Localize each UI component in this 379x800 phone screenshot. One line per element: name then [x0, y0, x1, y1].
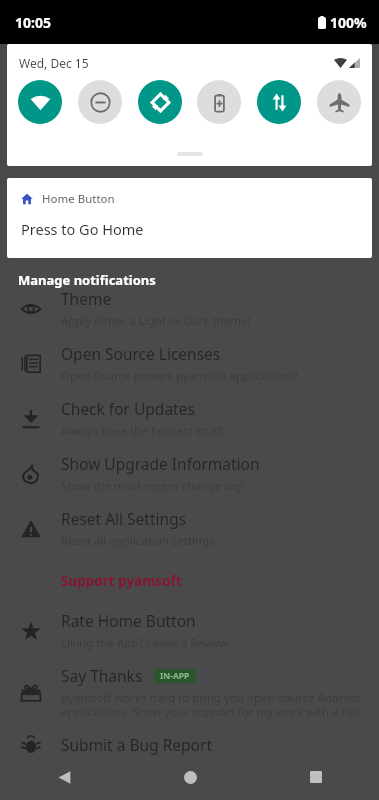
staticText: Liking the App? Leave a Review!: [61, 635, 231, 651]
staticText: Theme: [61, 288, 112, 309]
staticText: IN-APP: [160, 670, 190, 682]
button[interactable]: Open Source Licenses: [0, 336, 379, 391]
staticText: 10:05: [15, 13, 51, 32]
staticText: Open Source powers pyamsoft applications…: [61, 368, 298, 384]
button[interactable]: Check for Updates: [0, 391, 379, 446]
staticText: Say Thanks: [61, 665, 143, 686]
staticText: Home Button: [42, 191, 115, 207]
staticText: Show the most recent change log!: [61, 478, 245, 494]
button[interactable]: Rate Home Button: [0, 603, 379, 658]
button[interactable]: Say Thanks: [0, 658, 379, 727]
staticText: Check for Updates: [61, 398, 195, 419]
button[interactable]: Reset All Settings: [0, 501, 379, 556]
staticText: Apply either a Light or Dark theme!: [61, 313, 251, 329]
button[interactable]: Recents: [294, 755, 338, 799]
button[interactable]: Mobile data: [257, 80, 301, 124]
staticText: Reset All Settings: [61, 508, 187, 529]
button[interactable]: Submit a Bug Report: [0, 727, 379, 762]
button[interactable]: Battery saver: [197, 80, 241, 124]
staticText: Show Upgrade Information: [61, 453, 260, 474]
button[interactable]: Back: [42, 755, 86, 799]
staticText: Submit a Bug Report: [61, 734, 212, 755]
staticText: Wed, Dec 15: [19, 55, 89, 71]
staticText: Support pyamsoft: [61, 572, 182, 590]
button[interactable]: Theme: [0, 281, 379, 336]
button[interactable]: Home Button: [7, 178, 372, 258]
button[interactable]: Auto rotate: [138, 80, 182, 124]
staticText: Press to Go Home: [21, 219, 144, 239]
button[interactable]: Home: [168, 755, 212, 799]
staticText: Always have the fanciest stuff!: [61, 423, 224, 439]
staticText: 100%: [330, 13, 367, 32]
staticText: Reset all application settings: [61, 533, 215, 549]
button[interactable]: Show Upgrade Information: [0, 446, 379, 501]
staticText: pyamsoft works hard to bring you open-so…: [61, 690, 373, 720]
button[interactable]: Airplane mode: [317, 80, 361, 124]
button[interactable]: Do not disturb: [78, 80, 122, 124]
button[interactable]: Wi-Fi: [18, 80, 62, 124]
button[interactable]: Manage notifications: [18, 271, 156, 289]
staticText: Open Source Licenses: [61, 343, 221, 364]
staticText: Rate Home Button: [61, 610, 196, 631]
